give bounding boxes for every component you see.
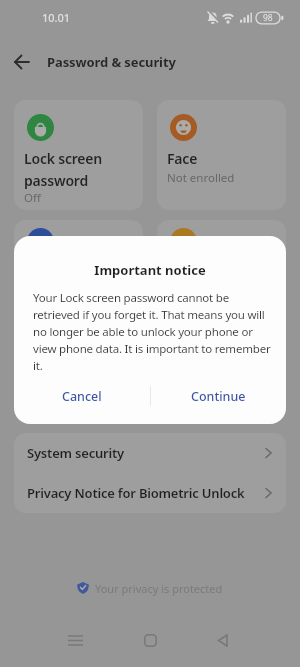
- button[interactable]: [207, 625, 237, 655]
- staticText: Your Lock screen password cannot be retr…: [33, 290, 271, 374]
- button[interactable]: [14, 100, 143, 210]
- staticText: Important notice: [14, 261, 286, 279]
- button[interactable]: System security: [14, 433, 286, 473]
- button[interactable]: [157, 100, 286, 210]
- staticText: Off: [24, 190, 41, 206]
- button[interactable]: [14, 220, 143, 330]
- staticText: Lock screen password: [24, 149, 103, 190]
- button[interactable]: [60, 625, 90, 655]
- staticText: 98: [263, 12, 273, 24]
- staticText: Not enrolled: [167, 170, 235, 186]
- button[interactable]: [10, 50, 34, 74]
- staticText: 10.01: [42, 10, 71, 25]
- staticText: Privacy Notice for Biometric Unlock: [27, 484, 265, 502]
- button[interactable]: Privacy Notice for Biometric Unlock: [14, 473, 286, 513]
- staticText: System security: [27, 444, 265, 462]
- staticText: Face: [167, 149, 198, 168]
- staticText: Your privacy is protected: [95, 581, 223, 596]
- button[interactable]: [157, 220, 286, 330]
- staticText: Cancel: [62, 388, 102, 405]
- staticText: Password & security: [47, 53, 176, 71]
- button[interactable]: Cancel: [14, 378, 150, 414]
- staticText: Continue: [191, 388, 246, 405]
- button[interactable]: [135, 625, 165, 655]
- button[interactable]: Continue: [150, 378, 286, 414]
